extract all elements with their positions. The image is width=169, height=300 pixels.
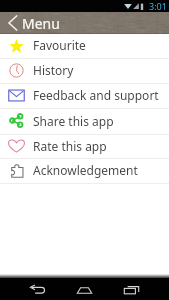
button[interactable]: Back xyxy=(0,12,22,34)
button[interactable]: Acknowledgement xyxy=(0,159,169,184)
staticText: Rate this app xyxy=(33,138,107,154)
staticText: Menu xyxy=(22,14,60,33)
staticText: 3:01 xyxy=(149,0,167,12)
button[interactable]: Back xyxy=(14,278,61,300)
button[interactable]: Recent apps xyxy=(108,278,155,300)
button[interactable]: Feedback and support xyxy=(0,84,169,109)
button[interactable]: Home xyxy=(61,278,108,300)
staticText: Share this app xyxy=(33,113,114,129)
staticText: Favourite xyxy=(33,37,86,53)
button[interactable]: History xyxy=(0,59,169,84)
button[interactable]: Favourite xyxy=(0,34,169,59)
button[interactable]: Rate this app xyxy=(0,135,169,159)
staticText: History xyxy=(33,62,74,78)
staticText: Acknowledgement xyxy=(33,162,138,178)
staticText: Feedback and support xyxy=(33,87,159,103)
button[interactable]: Share this app xyxy=(0,109,169,135)
